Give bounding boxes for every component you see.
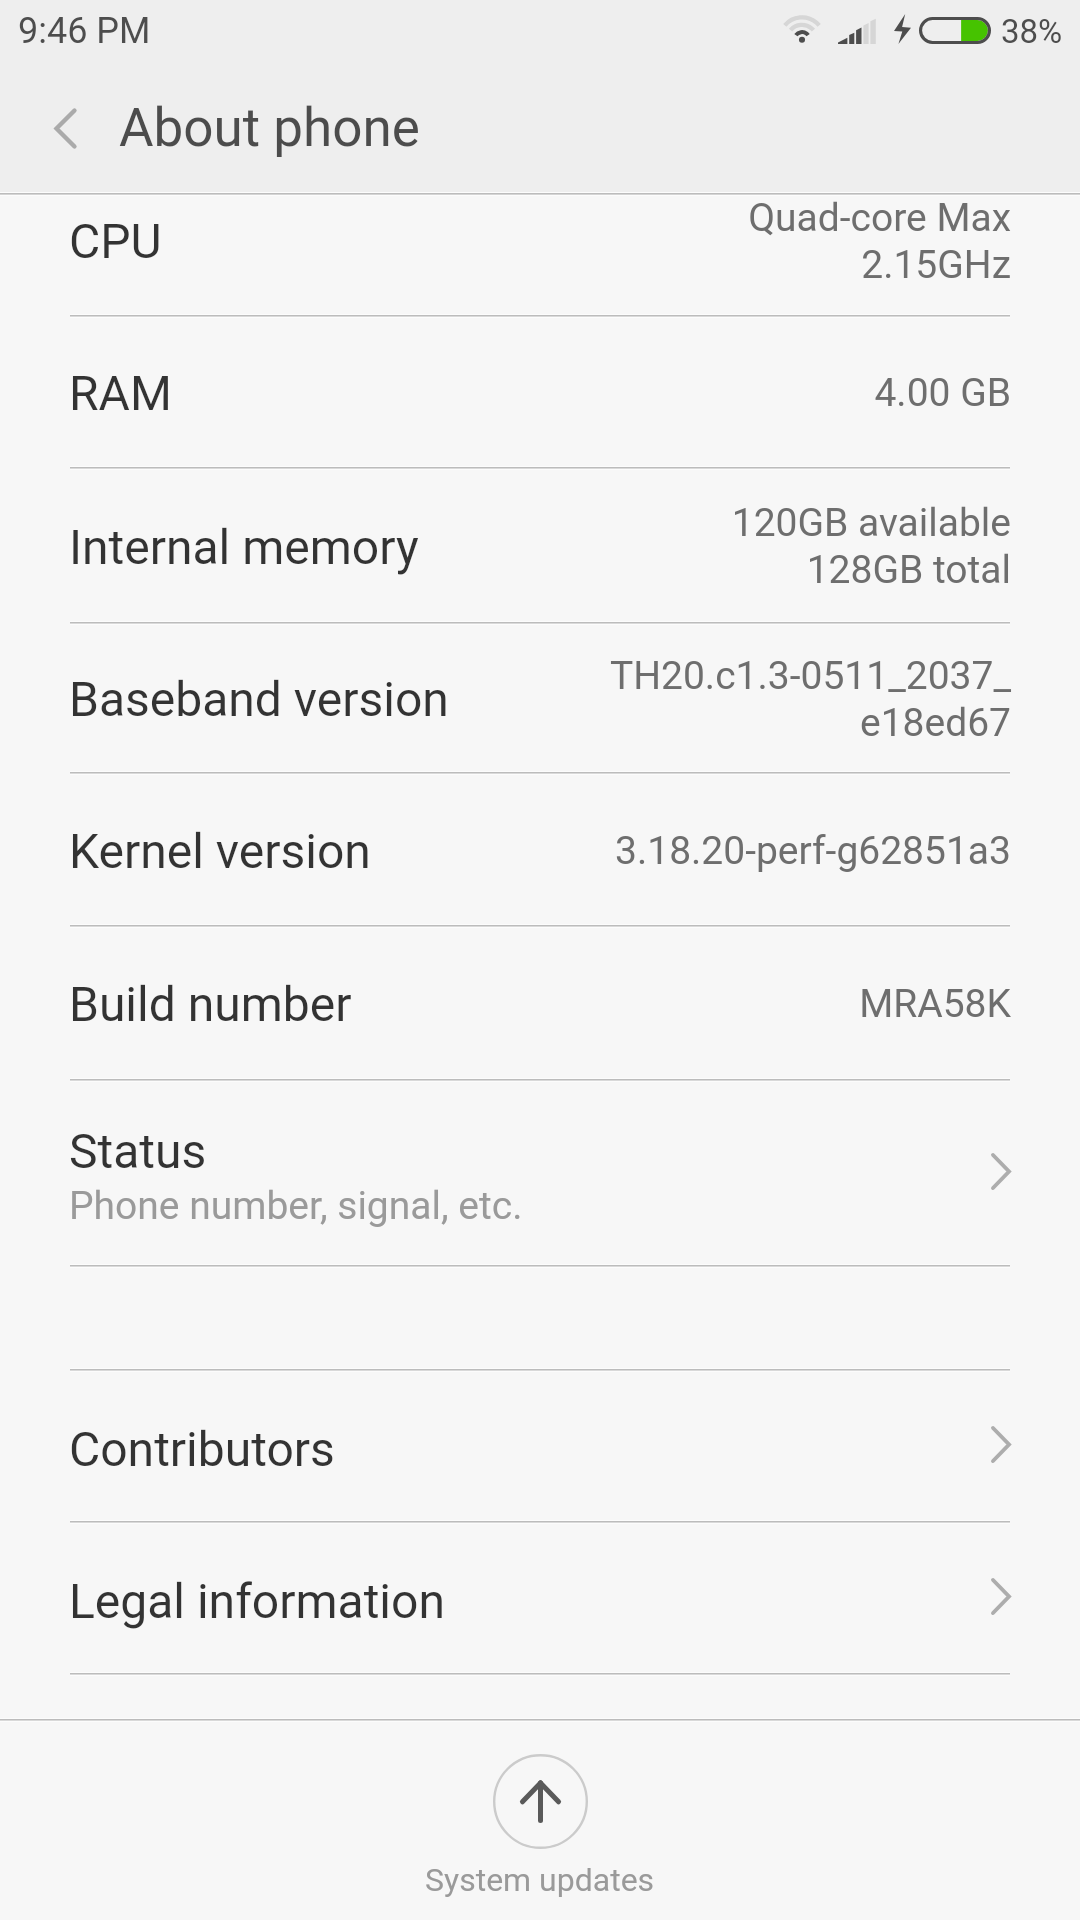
staticText: Status [69,1123,207,1179]
button[interactable]: Baseband version [0,621,1080,771]
staticText: System updates [425,1861,655,1899]
staticText: TH20.c1.3-0511_2037_ [609,653,1011,699]
staticText: Contributors [69,1421,335,1477]
staticText: RAM [69,365,874,421]
button[interactable]: CPU [0,192,1080,314]
staticText: Baseband version [69,671,609,727]
staticText: Phone number, signal, etc. [69,1183,523,1229]
staticText: MRA58K [859,981,1011,1027]
staticText: 2.15GHz [861,242,1011,288]
staticText: About phone [119,97,420,159]
button[interactable]: Contributors [0,1368,1080,1520]
button[interactable]: System updates [0,1722,1080,1920]
staticText: 3.18.20-perf-g62851a3 [615,828,1011,874]
staticText: Internal memory [69,519,731,575]
button[interactable]: Legal information [0,1520,1080,1672]
staticText: CPU [69,213,748,269]
staticText: 128GB total [806,547,1011,593]
staticText: Quad-core Max [748,195,1011,241]
button[interactable]: Build number [0,924,1080,1078]
staticText: Legal information [69,1573,445,1629]
staticText: 38% [1001,12,1063,51]
staticText: e18ed67 [859,700,1011,746]
button[interactable]: RAM [0,314,1080,466]
staticText: Build number [69,976,859,1032]
button[interactable]: Back [29,92,101,164]
staticText: 120GB available [731,500,1011,546]
button[interactable]: Internal memory [0,466,1080,621]
button[interactable]: Status [0,1078,1080,1264]
staticText: 4.00 GB [874,370,1011,416]
button[interactable]: Kernel version [0,771,1080,924]
staticText: 9:46 PM [18,10,151,52]
staticText: Kernel version [69,823,615,879]
